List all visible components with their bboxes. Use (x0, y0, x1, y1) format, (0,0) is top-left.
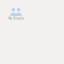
staticText: No Results (8, 17, 23, 20)
